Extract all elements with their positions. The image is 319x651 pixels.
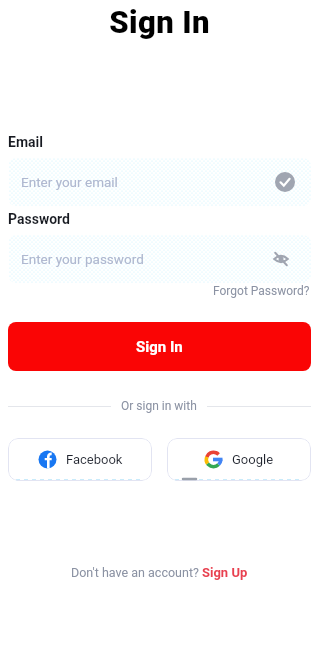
button[interactable]: Sign In xyxy=(8,322,311,371)
staticText: Google xyxy=(232,452,274,467)
staticText: Don't have an account? xyxy=(71,565,202,580)
staticText: Enter your password xyxy=(21,251,144,267)
staticText: Or sign in with xyxy=(121,399,197,413)
staticText: Email xyxy=(8,134,43,150)
staticText: Enter your email xyxy=(21,174,118,190)
staticText: Password xyxy=(8,211,70,227)
button[interactable]: Enter your password xyxy=(8,235,311,283)
staticText: Facebook xyxy=(66,452,123,467)
button[interactable]: Sign Up xyxy=(202,565,248,580)
staticText: Sign In xyxy=(0,4,319,40)
button[interactable]: Google xyxy=(167,438,311,481)
button[interactable]: Forgot Password? xyxy=(213,284,310,298)
staticText: Sign In xyxy=(136,338,183,356)
button[interactable]: Enter your email xyxy=(8,158,311,206)
button[interactable]: Facebook xyxy=(8,438,152,481)
